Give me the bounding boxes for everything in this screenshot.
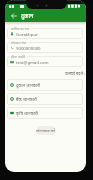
button[interactable]: पासवर्ड बदलें ›	[63, 69, 86, 78]
button[interactable]: Back	[9, 11, 19, 21]
staticText: मालिक का नाम	[11, 26, 30, 30]
staticText: कृषि जानकारी	[16, 110, 38, 116]
staticText: बैंक जानकारी	[16, 96, 37, 102]
button[interactable]	[7, 28, 83, 39]
button[interactable]: कृषि जानकारी	[7, 107, 83, 119]
staticText: दुकान	[21, 12, 34, 20]
button[interactable]: दुकान जानकारी	[7, 79, 83, 91]
button[interactable]	[7, 42, 83, 53]
button[interactable]	[7, 56, 83, 67]
staticText: लॉगआउट करें	[36, 128, 56, 133]
staticText: मोबाइल नंबर	[11, 40, 27, 44]
staticText: 9000000000	[16, 45, 41, 51]
staticText: पासवर्ड बदलें ›	[65, 71, 86, 76]
button[interactable]: बैंक जानकारी	[7, 93, 83, 105]
staticText: test@gmail.com	[16, 59, 49, 65]
staticText: दुकान जानकारी	[16, 82, 41, 88]
staticText: Gorakhpur	[16, 31, 38, 37]
button[interactable]: लॉगआउट करें	[36, 126, 56, 135]
staticText: ईमेल आईडी	[11, 54, 26, 58]
